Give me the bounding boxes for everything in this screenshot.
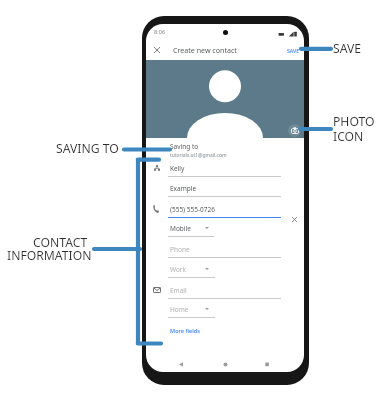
staticText: 8:06	[154, 28, 166, 36]
button[interactable]: Add photo	[288, 124, 301, 137]
staticText: SAVE	[333, 40, 362, 57]
staticText: CONTACT	[33, 234, 88, 251]
staticText: INFORMATION	[7, 247, 92, 264]
button[interactable]: Email	[146, 281, 304, 301]
staticText: SAVING TO	[56, 140, 119, 157]
staticText: tutorials.ut1@gmail.com	[170, 152, 227, 159]
staticText: Home	[170, 305, 189, 314]
button[interactable]: Kelly	[146, 159, 304, 179]
button[interactable]: Phone	[146, 240, 304, 260]
button[interactable]: Work	[146, 260, 304, 280]
button[interactable]: SAVE	[287, 47, 300, 54]
staticText: Saving to	[170, 142, 199, 151]
staticText: Email	[170, 286, 187, 295]
staticText: Example	[170, 184, 197, 193]
staticText: Create new contact	[173, 45, 237, 55]
button[interactable]: Clear phone number	[289, 214, 299, 224]
button[interactable]: Example	[146, 179, 304, 199]
staticText: Phone	[170, 245, 190, 254]
staticText: Kelly	[170, 164, 185, 173]
staticText: Work	[170, 265, 187, 274]
staticText: SAVE	[287, 47, 300, 54]
staticText: Mobile	[170, 224, 191, 233]
button[interactable]: (555) 555-0726	[146, 200, 304, 220]
button[interactable]: Close	[148, 41, 165, 58]
button[interactable]: Mobile	[146, 219, 304, 239]
staticText: ICON	[333, 128, 364, 145]
button[interactable]: More fields	[170, 327, 200, 335]
staticText: PHOTO	[333, 113, 375, 130]
staticText: (555) 555-0726	[170, 205, 215, 214]
staticText: More fields	[170, 327, 200, 335]
button[interactable]: Home	[146, 300, 304, 320]
